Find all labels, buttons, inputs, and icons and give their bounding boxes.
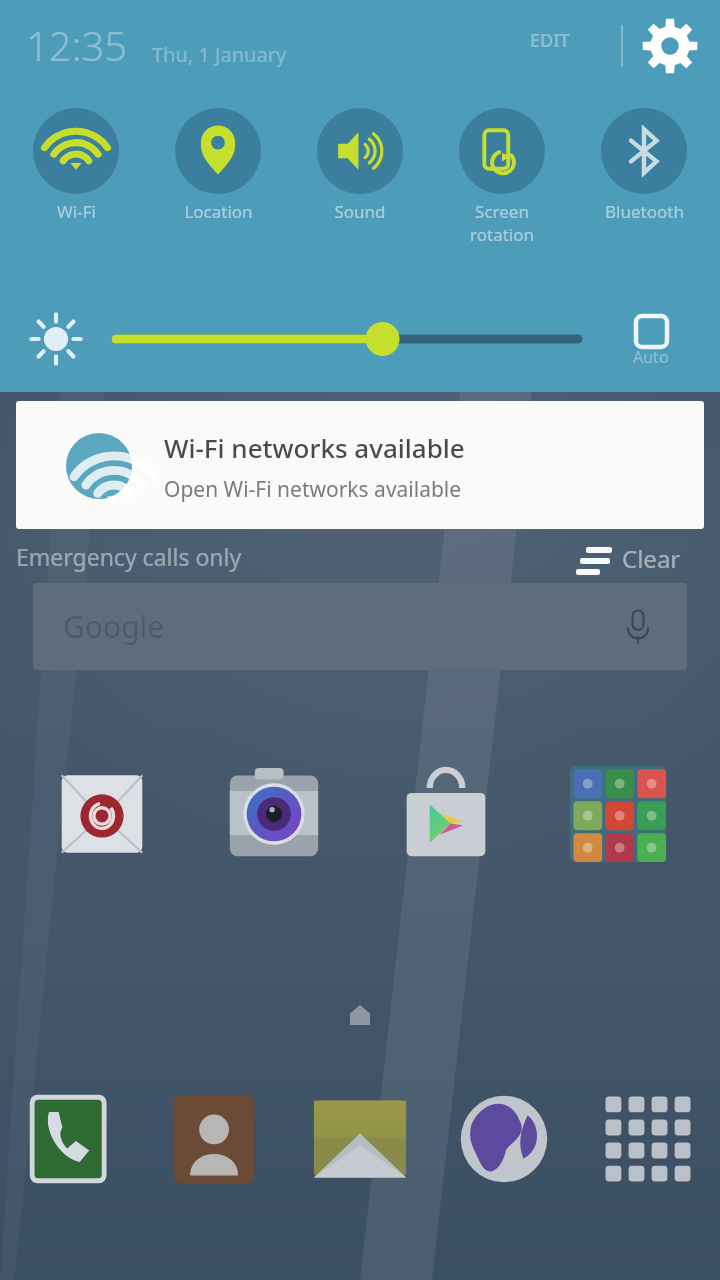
staticText: Location	[184, 200, 253, 223]
button[interactable]: Screen rotation	[446, 100, 558, 280]
button[interactable]: Sound	[304, 100, 416, 280]
staticText: Google	[63, 606, 165, 647]
staticText: Auto	[633, 346, 669, 368]
staticText: Thu, 1 January	[152, 41, 287, 68]
staticText: Emergency calls only	[16, 541, 242, 572]
staticText: Sound	[334, 200, 386, 223]
staticText: Screen rotation	[470, 200, 534, 246]
button[interactable]: Contacts	[168, 1091, 264, 1187]
button[interactable]: Wi-Fi networks available	[16, 401, 704, 529]
button[interactable]: Browser	[456, 1091, 552, 1187]
button[interactable]: Wi-Fi	[20, 100, 132, 280]
staticText: 12:35	[26, 18, 128, 72]
staticText: Wi-Fi networks available	[164, 430, 465, 465]
button[interactable]: Bluetooth	[588, 100, 700, 280]
button[interactable]: Brightness	[28, 311, 84, 367]
button[interactable]: Voice search	[615, 604, 661, 650]
button[interactable]: Clear	[576, 538, 681, 578]
staticText: Clear	[622, 542, 681, 575]
staticText: EDIT	[530, 28, 570, 53]
staticText: Bluetooth	[605, 200, 684, 223]
button[interactable]: Camera	[226, 766, 322, 862]
button[interactable]: EDIT	[530, 28, 570, 53]
button[interactable]: Auto	[608, 305, 694, 385]
button[interactable]: Play Store	[398, 766, 494, 862]
button[interactable]: Settings	[640, 16, 700, 76]
button[interactable]: Email	[54, 766, 150, 862]
staticText: Wi-Fi	[57, 200, 96, 223]
button[interactable]: Apps	[600, 1091, 696, 1187]
button[interactable]	[110, 316, 584, 362]
button[interactable]: Messaging	[312, 1091, 408, 1187]
button[interactable]: Location	[162, 100, 274, 280]
button[interactable]: Phone	[24, 1091, 120, 1187]
staticText: Open Wi-Fi networks available	[164, 475, 462, 504]
button[interactable]: Google	[570, 766, 666, 862]
